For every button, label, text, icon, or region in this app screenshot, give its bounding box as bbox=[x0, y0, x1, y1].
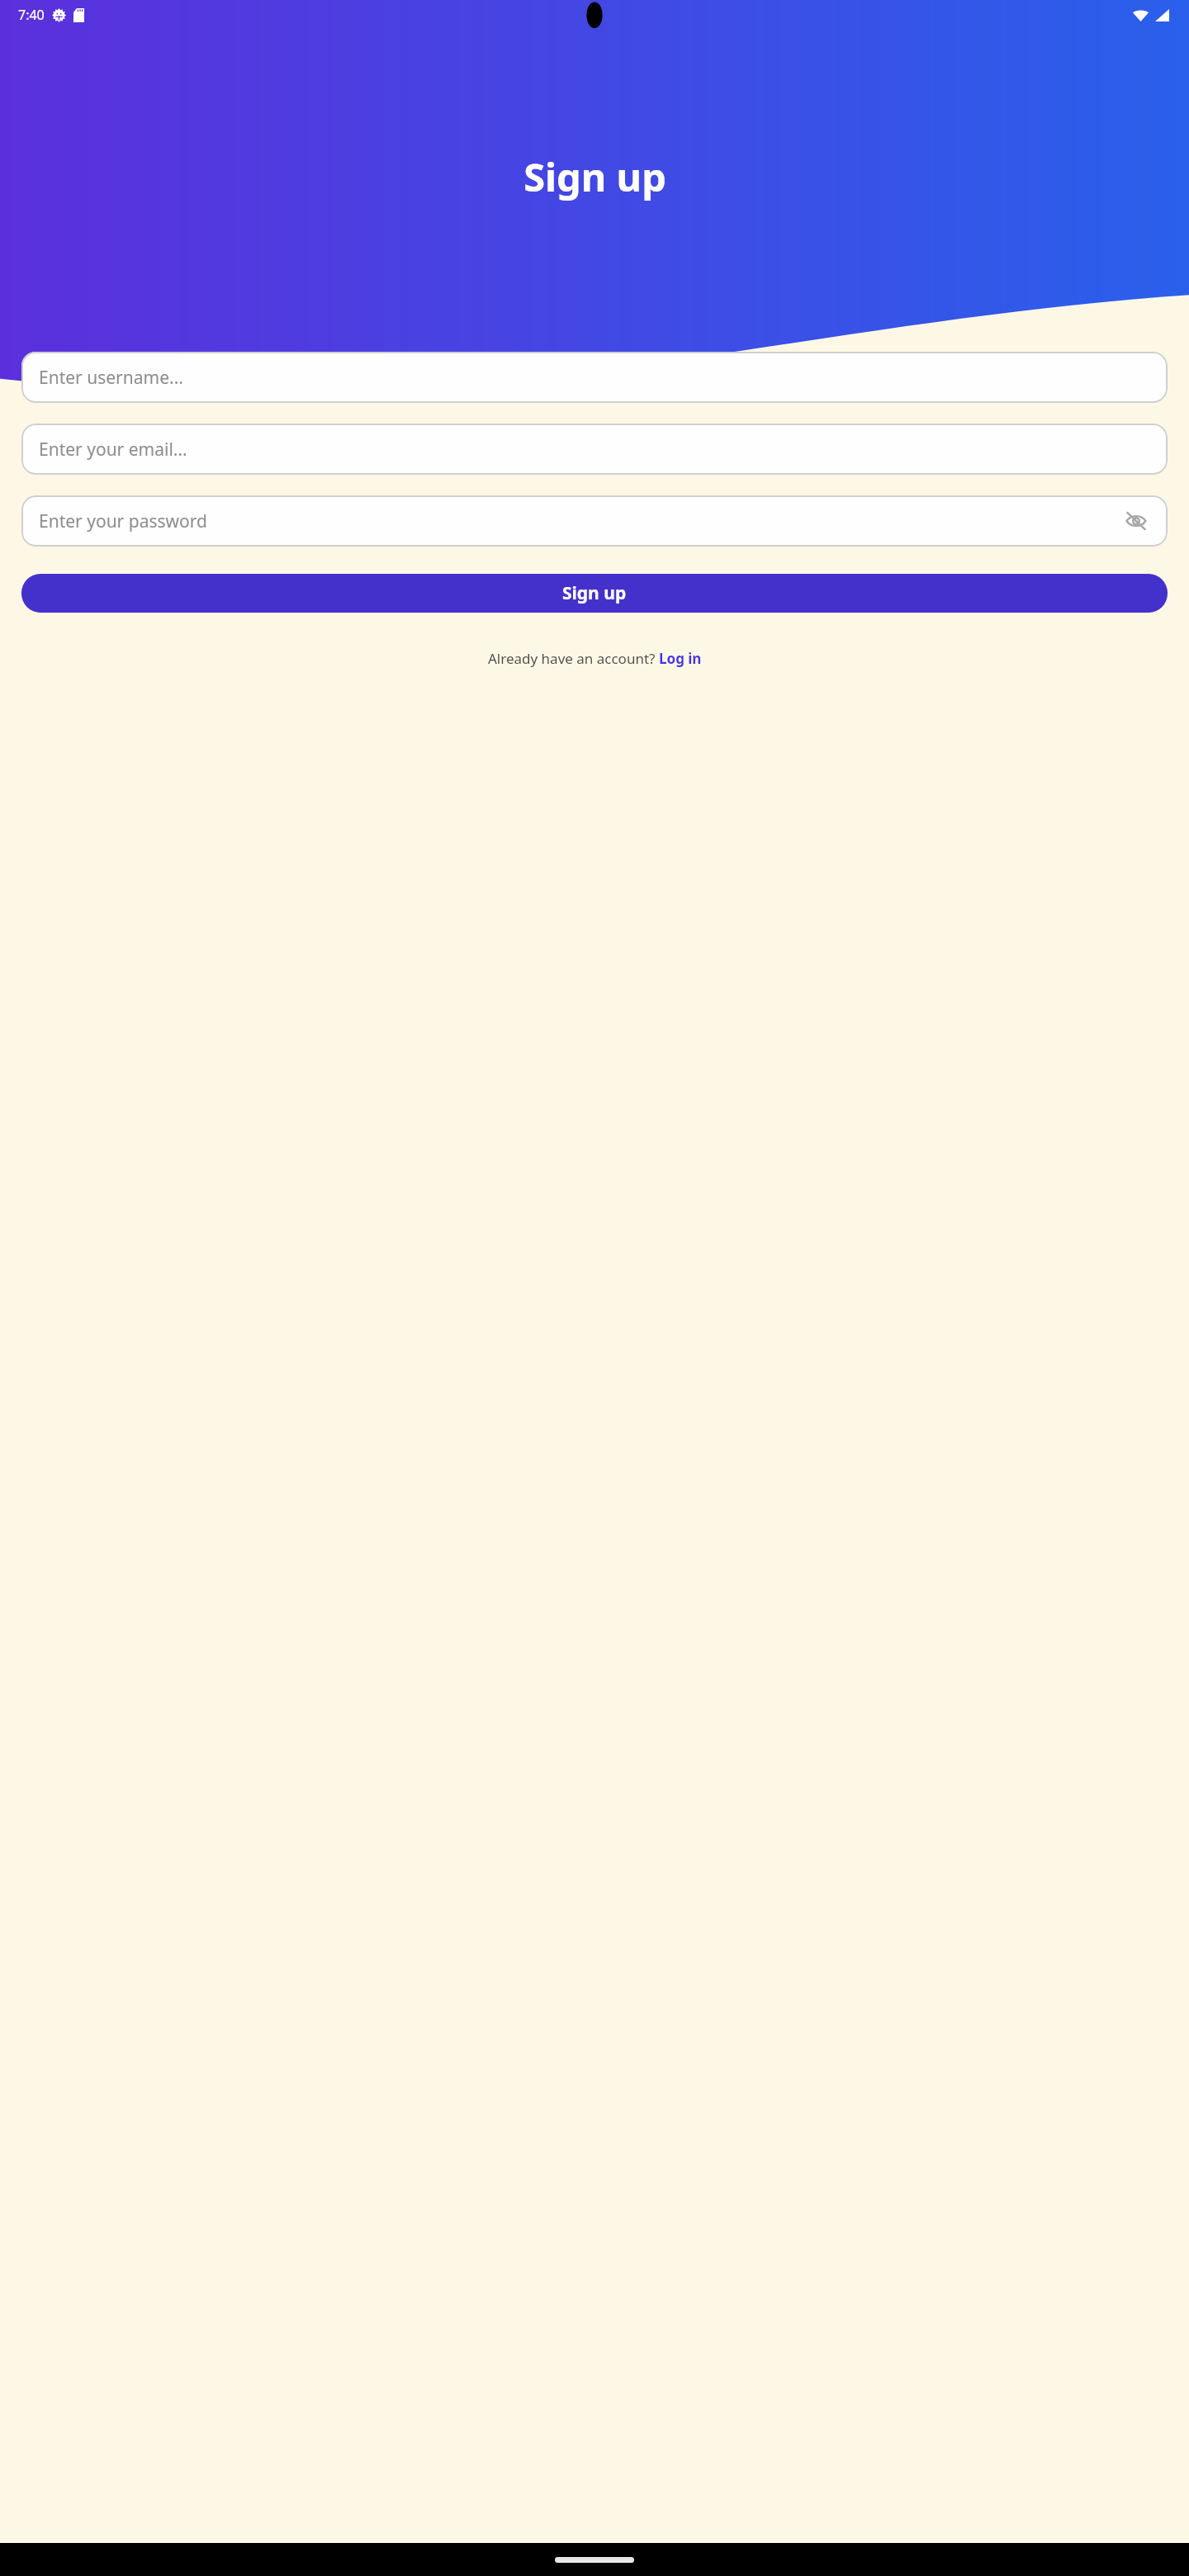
staticText: Enter username... bbox=[39, 366, 183, 390]
staticText: Sign up bbox=[523, 150, 666, 203]
staticText: Enter your password bbox=[39, 509, 207, 533]
button[interactable]: Enter your email... bbox=[21, 424, 1168, 475]
staticText: Log in bbox=[659, 649, 702, 668]
staticText: Already have an account? bbox=[488, 649, 659, 668]
button[interactable]: Log in bbox=[659, 649, 702, 668]
staticText: Sign up bbox=[562, 581, 627, 605]
button[interactable]: Sign up bbox=[21, 574, 1168, 613]
staticText: Enter your email... bbox=[39, 438, 187, 462]
staticText: 7:40 bbox=[18, 6, 45, 24]
button[interactable]: Toggle password visibility bbox=[1118, 503, 1154, 539]
button[interactable]: Enter your password bbox=[21, 495, 1168, 547]
button[interactable]: Enter username... bbox=[21, 352, 1168, 403]
